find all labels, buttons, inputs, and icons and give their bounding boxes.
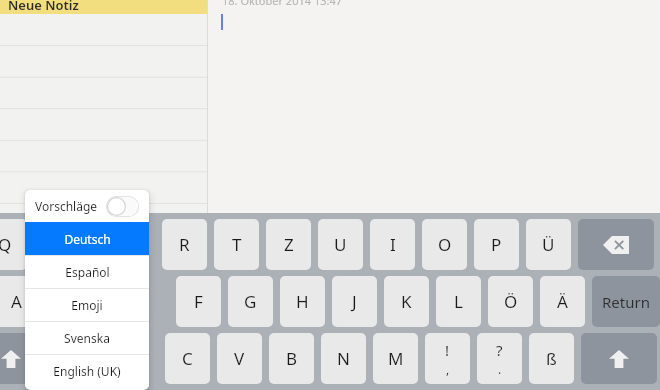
staticText: ? [496,340,503,360]
staticText: I [390,233,396,256]
button[interactable]: ß [529,333,574,384]
staticText: ! [445,340,450,360]
button[interactable]: English (UK) [25,354,149,387]
button[interactable]: Q [0,219,27,270]
button[interactable]: C [165,333,210,384]
button[interactable]: H [280,276,325,327]
staticText: Z [284,233,294,256]
button[interactable]: Return [592,276,660,327]
staticText: S [64,290,74,313]
staticText: A [11,290,22,313]
staticText: Vorschläge [35,198,98,214]
button[interactable]: ? [477,333,522,384]
button[interactable]: X [100,333,145,384]
button[interactable]: Y [48,333,93,384]
staticText: Return [602,292,650,312]
staticText: W [49,233,65,256]
staticText: F [194,290,203,313]
staticText: K [401,290,412,313]
button[interactable]: Ü [526,219,571,270]
staticText: Deutsch [64,231,111,247]
staticText: , [446,361,450,377]
staticText: M [388,347,404,370]
button[interactable]: Svenska [25,321,149,354]
button[interactable]: K [384,276,429,327]
staticText: N [337,347,350,370]
staticText: Ö [504,290,518,313]
staticText: X [118,347,128,370]
button[interactable]: Ä [540,276,585,327]
button[interactable]: L [436,276,481,327]
button[interactable]: R [162,219,207,270]
button[interactable]: N [321,333,366,384]
button[interactable]: O [422,219,467,270]
button[interactable]: Emoji [25,288,149,321]
button[interactable]: Shift [0,333,42,384]
staticText: Emoji [71,297,103,313]
button[interactable]: B [269,333,314,384]
staticText: Q [0,233,12,256]
button[interactable]: Z [266,219,311,270]
staticText: Español [65,264,110,280]
button[interactable]: D [98,276,143,327]
button[interactable]: T [214,219,259,270]
button[interactable]: Español [25,255,149,288]
staticText: Neue Notiz [8,0,79,14]
staticText: 18. Oktober 2014 13:47 [222,0,342,8]
button[interactable]: E [86,219,131,270]
staticText: ß [546,347,557,370]
staticText: E [104,233,114,256]
staticText: Ä [557,290,568,313]
button[interactable]: V [217,333,262,384]
button[interactable]: U [318,219,363,270]
staticText: L [454,290,463,313]
button[interactable]: Delete [578,219,654,270]
button[interactable]: S [46,276,91,327]
staticText: H [296,290,309,313]
button[interactable]: M [373,333,418,384]
button[interactable]: Shift [581,333,657,384]
button[interactable]: F [176,276,221,327]
staticText: T [232,233,242,256]
staticText: G [244,290,257,313]
button[interactable]: G [228,276,273,327]
button[interactable]: W [34,219,79,270]
button[interactable]: J [332,276,377,327]
button[interactable]: Deutsch [25,222,149,255]
staticText: P [491,233,502,256]
staticText: U [334,233,347,256]
button[interactable]: Vorschläge [25,190,149,222]
button[interactable]: Ö [488,276,533,327]
staticText: B [286,347,298,370]
staticText: . [498,361,502,377]
staticText: Y [66,347,76,370]
staticText: Ü [542,233,555,256]
staticText: C [182,347,193,370]
button[interactable]: ! [425,333,470,384]
staticText: English (UK) [53,363,121,379]
button[interactable]: A [0,276,39,327]
staticText: Svenska [64,330,110,346]
staticText: J [352,290,357,313]
staticText: O [438,233,452,256]
button[interactable]: P [474,219,519,270]
button[interactable]: I [370,219,415,270]
staticText: R [179,233,190,256]
staticText: V [234,347,245,370]
